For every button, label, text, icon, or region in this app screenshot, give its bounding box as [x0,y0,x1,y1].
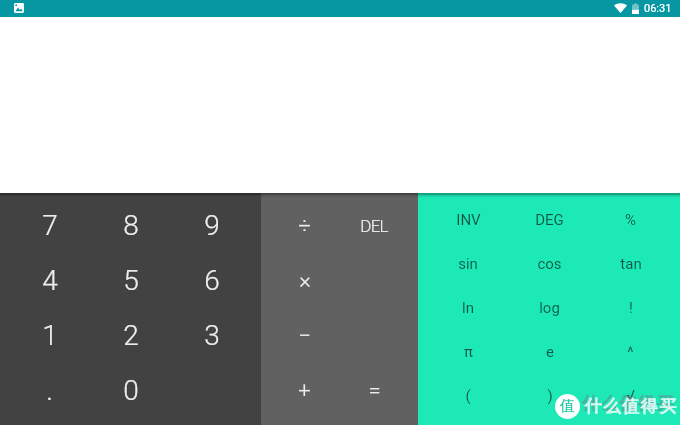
button[interactable]: DEL [339,198,409,253]
staticText: ( [465,387,471,405]
staticText: INV [456,211,481,229]
staticText: + [298,378,311,404]
button[interactable]: DEG [509,198,590,242]
button[interactable]: 4 [9,253,90,308]
staticText: = [368,378,381,404]
staticText: 9 [204,209,220,242]
button[interactable]: 7 [9,198,90,253]
button[interactable]: INV [427,198,509,242]
staticText: × [299,268,311,294]
staticText: 5 [123,264,139,297]
button[interactable]: 1 [9,308,90,363]
button[interactable]: tan [590,242,671,286]
staticText: − [298,323,311,349]
button[interactable]: ! [590,286,671,330]
staticText: √ [626,387,635,405]
button[interactable]: . [9,363,90,418]
button[interactable]: ÷ [270,198,339,253]
staticText: . [46,374,53,407]
staticText: log [539,299,560,317]
button[interactable]: 5 [90,253,171,308]
staticText: ) [547,387,553,405]
button[interactable]: ( [427,374,509,418]
staticText: 什么值得买 [581,393,674,414]
staticText: cos [537,255,562,273]
button[interactable]: ) [509,374,590,418]
button[interactable]: 6 [171,253,252,308]
button[interactable]: × [270,253,339,308]
button[interactable]: π [427,330,509,374]
other: Battery [632,3,639,14]
button[interactable]: − [270,308,339,363]
staticText: 3 [204,319,220,352]
staticText: 4 [42,264,58,297]
other: Wi-Fi [614,3,627,13]
staticText: 什么值得买 [584,396,677,417]
button[interactable]: 8 [90,198,171,253]
button[interactable]: 2 [90,308,171,363]
button[interactable]: + [270,363,339,418]
staticText: 值 [560,397,575,416]
staticText: ^ [627,343,634,361]
button[interactable]: 0 [90,363,171,418]
staticText: π [464,343,473,361]
button[interactable]: ^ [590,330,671,374]
staticText: 6 [204,264,220,297]
button[interactable]: √ [590,374,671,418]
staticText: DEG [535,211,564,229]
button[interactable]: cos [509,242,590,286]
staticText: 0 [123,374,139,407]
staticText: ÷ [298,213,311,239]
staticText: % [625,211,636,229]
button[interactable]: Screenshot taken [14,3,24,13]
button[interactable]: ln [427,286,509,330]
button[interactable]: sin [427,242,509,286]
staticText: sin [458,255,478,273]
button[interactable]: log [509,286,590,330]
staticText: ln [462,299,474,317]
staticText: DEL [360,216,388,236]
button[interactable]: 9 [171,198,252,253]
staticText: 2 [123,319,139,352]
staticText: 7 [42,209,58,242]
staticText: ! [629,299,633,317]
button[interactable]: % [590,198,671,242]
staticText: e [546,343,554,361]
button[interactable]: e [509,330,590,374]
button[interactable]: 3 [171,308,252,363]
staticText: 8 [123,209,139,242]
staticText: tan [620,255,642,273]
staticText: 06:31 [644,2,672,15]
staticText: 1 [42,319,58,352]
button[interactable]: = [339,363,409,418]
